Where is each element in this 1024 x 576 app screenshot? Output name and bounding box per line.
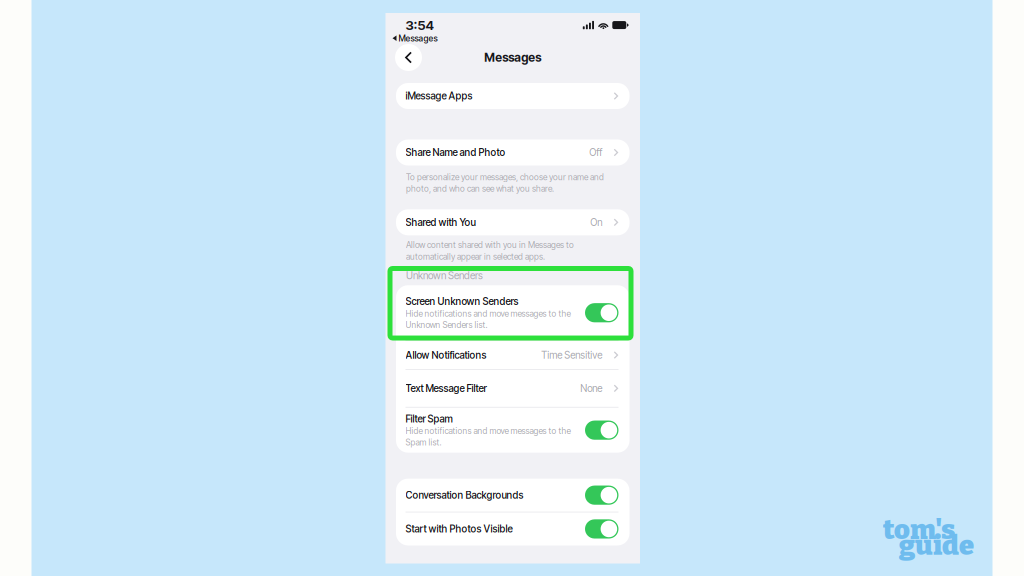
button[interactable]: Share Name and Photo	[396, 139, 629, 165]
staticText: Allow Notifications	[405, 349, 486, 361]
staticText: To personalize your messages, choose you…	[406, 172, 604, 182]
staticText: None	[580, 382, 602, 394]
staticText: Messages	[484, 50, 541, 65]
button[interactable]: Shared with You	[396, 209, 629, 235]
staticText: Off	[589, 146, 602, 158]
staticText: tom's	[883, 513, 955, 546]
staticText: Start with Photos Visible	[405, 523, 512, 535]
staticText: Hide notifications and move messages to …	[405, 309, 570, 319]
staticText: guide	[899, 529, 974, 562]
staticText: Share Name and Photo	[405, 146, 505, 158]
staticText: Time Sensitive	[541, 349, 602, 361]
staticText: Screen Unknown Senders	[405, 295, 518, 307]
button[interactable]: Allow Notifications	[396, 341, 629, 369]
staticText: automatically appear in selected apps.	[406, 251, 545, 262]
staticText: iMessage Apps	[405, 90, 472, 102]
staticText: 3:54	[405, 17, 433, 33]
staticText: Shared with You	[405, 216, 475, 228]
staticText: On	[590, 216, 602, 228]
staticText: Unknown Senders list.	[405, 320, 487, 330]
button[interactable]: Back	[395, 44, 422, 71]
staticText: photo, and who can see what you share.	[406, 184, 554, 194]
staticText: Conversation Backgrounds	[405, 489, 523, 501]
staticText: Text Message Filter	[405, 382, 486, 394]
button[interactable]: iMessage Apps	[396, 83, 629, 109]
staticText: Unknown Senders	[406, 270, 483, 282]
button[interactable]: Conversation Backgrounds	[396, 479, 629, 512]
button[interactable]: Screen Unknown Senders	[396, 285, 629, 340]
staticText: Filter Spam	[405, 413, 452, 425]
button[interactable]: Start with Photos Visible	[396, 512, 629, 545]
staticText: Allow content shared with you in Message…	[406, 240, 574, 250]
button[interactable]: Filter Spam	[396, 408, 629, 453]
staticText: Messages	[398, 33, 437, 43]
staticText: Spam list.	[405, 437, 441, 447]
button[interactable]: Text Message Filter	[396, 370, 629, 407]
staticText: Hide notifications and move messages to …	[405, 426, 570, 436]
